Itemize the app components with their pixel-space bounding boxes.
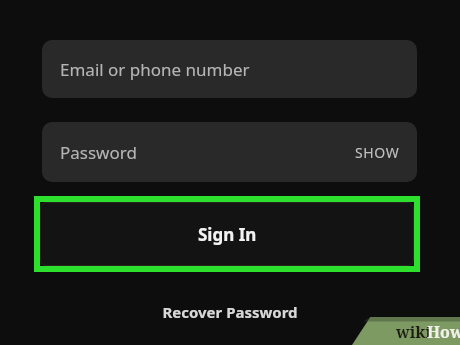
staticText: Email or phone number [60,58,250,81]
button[interactable]: SHOW [338,135,417,170]
staticText: SHOW [355,143,400,162]
staticText: wiki [396,321,432,343]
staticText: Password [60,141,137,164]
staticText: Recover Password [162,302,298,322]
staticText: Sign In [198,223,257,246]
button[interactable]: Sign In [40,202,414,266]
button[interactable]: Recover Password [150,296,310,328]
staticText: How [427,321,460,343]
button[interactable]: Email or phone number [42,40,417,98]
button[interactable]: Password [42,122,417,182]
